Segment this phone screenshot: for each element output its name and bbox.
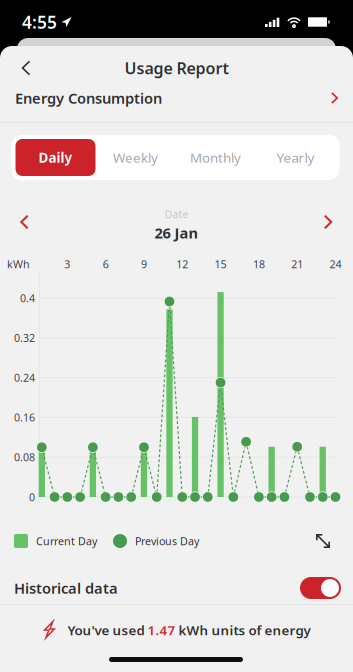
staticText: Weekly bbox=[113, 149, 158, 166]
staticText: kWh bbox=[7, 257, 30, 271]
button[interactable]: Back bbox=[8, 50, 44, 86]
staticText: 18 bbox=[253, 257, 265, 271]
staticText: 21 bbox=[291, 257, 303, 271]
staticText: 26 Jan bbox=[154, 223, 198, 243]
staticText: Date bbox=[164, 207, 188, 221]
button[interactable]: Weekly bbox=[95, 139, 175, 176]
staticText: 15 bbox=[215, 257, 227, 271]
button[interactable]: Previous date bbox=[9, 207, 39, 237]
button[interactable]: Energy Consumption bbox=[0, 81, 353, 115]
staticText: 24 bbox=[329, 257, 341, 271]
button[interactable]: Yearly bbox=[255, 139, 335, 176]
staticText: 0.16 bbox=[14, 410, 35, 424]
staticText: 0.32 bbox=[14, 331, 35, 345]
staticText: Energy Consumption bbox=[15, 88, 162, 108]
staticText: Usage Report bbox=[124, 57, 228, 79]
button[interactable]: Next date bbox=[313, 207, 343, 237]
staticText: 9 bbox=[141, 257, 147, 271]
staticText: 3 bbox=[64, 257, 70, 271]
staticText: Previous Day bbox=[135, 534, 199, 548]
staticText: 0.4 bbox=[20, 291, 35, 305]
staticText: You've used bbox=[67, 621, 147, 639]
button[interactable]: Expand chart bbox=[309, 527, 337, 555]
staticText: kWh units of energy bbox=[175, 621, 310, 639]
staticText: Current Day bbox=[36, 534, 97, 548]
staticText: 12 bbox=[176, 257, 188, 271]
staticText: Yearly bbox=[276, 149, 314, 166]
staticText: 6 bbox=[103, 257, 109, 271]
staticText: Daily bbox=[38, 149, 72, 166]
button[interactable]: Daily bbox=[15, 139, 95, 176]
button[interactable]: Monthly bbox=[175, 139, 255, 176]
staticText: 4:55 bbox=[22, 10, 57, 33]
staticText: Historical data bbox=[14, 578, 118, 598]
staticText: 0 bbox=[29, 490, 35, 504]
staticText: Monthly bbox=[190, 149, 241, 166]
staticText: 0.24 bbox=[14, 370, 35, 385]
button[interactable]: Historical data toggle bbox=[300, 577, 341, 599]
staticText: 0.08 bbox=[14, 450, 35, 464]
staticText: 1.47 bbox=[147, 621, 175, 639]
